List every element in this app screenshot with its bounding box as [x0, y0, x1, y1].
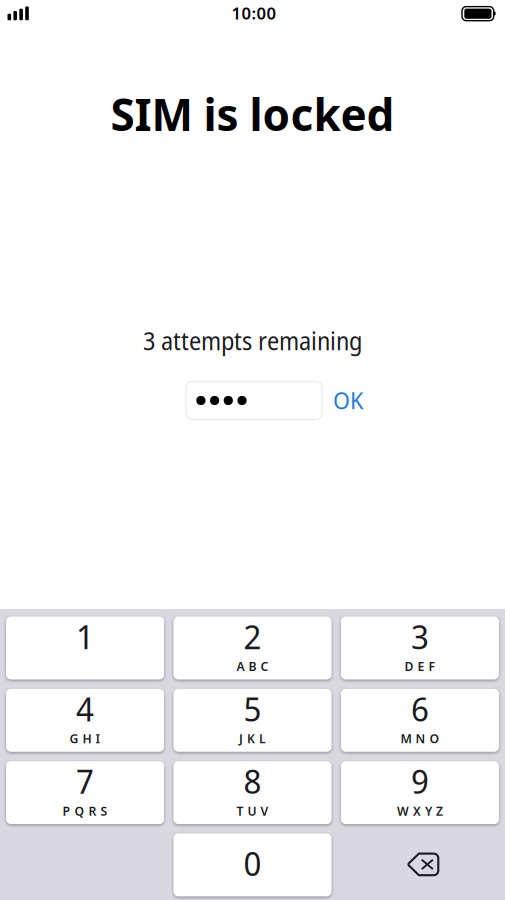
button[interactable]: 3: [341, 616, 499, 679]
staticText: 8: [243, 758, 261, 803]
staticText: JKL: [239, 730, 266, 747]
staticText: 6: [411, 686, 429, 731]
button[interactable]: 7: [6, 761, 164, 824]
button[interactable]: 8: [173, 761, 331, 824]
staticText: SIM is locked: [110, 84, 394, 144]
staticText: 4: [76, 686, 94, 731]
staticText: WXYZ: [397, 802, 443, 819]
staticText: 3 attempts remaining: [143, 324, 362, 358]
staticText: PQRS: [63, 802, 108, 819]
staticText: TUV: [236, 802, 268, 819]
button[interactable]: 9: [341, 761, 499, 824]
button[interactable]: 5: [173, 689, 331, 752]
staticText: DEF: [404, 657, 435, 675]
staticText: 10:00: [231, 2, 276, 24]
button[interactable]: 6: [341, 689, 499, 752]
button[interactable]: 4: [6, 689, 164, 752]
staticText: GHI: [70, 730, 101, 747]
staticText: MNO: [400, 730, 439, 747]
staticText: ABC: [236, 657, 268, 675]
staticText: OK: [333, 385, 363, 416]
button[interactable]: 1: [6, 616, 164, 679]
button[interactable]: 0: [173, 833, 331, 896]
button[interactable]: OK: [322, 381, 374, 419]
staticText: 1: [76, 613, 94, 659]
staticText: 2: [243, 613, 261, 659]
staticText: 9: [411, 758, 429, 803]
staticText: 7: [76, 758, 94, 803]
button[interactable]: Delete: [341, 833, 499, 896]
staticText: 3: [411, 613, 429, 659]
button[interactable]: 2: [173, 616, 331, 679]
staticText: 5: [243, 686, 261, 731]
staticText: 0: [243, 840, 261, 886]
